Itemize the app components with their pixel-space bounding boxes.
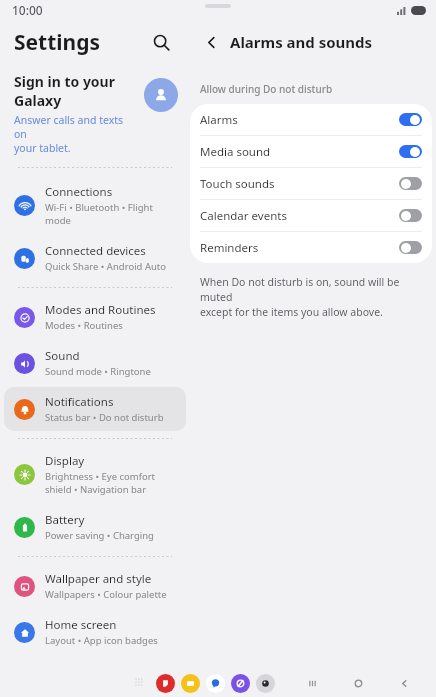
button[interactable]: recents (302, 673, 322, 693)
button[interactable]: Back (198, 29, 224, 55)
button[interactable]: Sign in to your (0, 64, 190, 161)
button[interactable]: Battery (4, 505, 186, 549)
staticText: Sound mode • Ringtone (45, 365, 151, 378)
button[interactable] (399, 113, 422, 126)
staticText: Wallpapers • Colour palette (45, 588, 167, 601)
staticText: Wallpaper and style (45, 571, 152, 587)
staticText: Connections (45, 184, 113, 200)
staticText: 10:00 (12, 2, 43, 18)
button[interactable] (399, 209, 422, 222)
button[interactable]: Calendar events (190, 200, 432, 231)
staticText: Modes and Routines (45, 302, 156, 318)
staticText: Connected devices (45, 243, 146, 259)
button[interactable]: Display (4, 446, 186, 503)
staticText: Home screen (45, 617, 117, 633)
staticText: Allow during Do not disturb (200, 82, 333, 96)
staticText: Media sound (200, 144, 399, 160)
staticText: Battery (45, 512, 85, 528)
staticText: Brightness • Eye comfort shield • Naviga… (45, 470, 156, 496)
staticText: Sound (45, 348, 80, 364)
staticText: Modes • Routines (45, 319, 123, 332)
button[interactable]: files (181, 674, 200, 693)
staticText: Layout • App icon badges (45, 634, 158, 647)
button[interactable]: Alarms (190, 104, 432, 135)
button[interactable]: Touch sounds (190, 168, 432, 199)
staticText: Calendar events (200, 208, 399, 224)
staticText: Reminders (200, 240, 399, 256)
staticText: Status bar • Do not disturb (45, 411, 164, 424)
button[interactable]: internet (231, 674, 250, 693)
button[interactable]: notes (156, 674, 175, 693)
button[interactable]: Sound (4, 341, 186, 385)
button[interactable]: Reminders (190, 232, 432, 263)
button[interactable]: Modes and Routines (4, 295, 186, 339)
staticText: Wi-Fi • Bluetooth • Flight mode (45, 201, 153, 227)
button[interactable]: home (348, 673, 368, 693)
button[interactable]: Notifications (4, 387, 186, 431)
button[interactable]: Search (146, 27, 176, 57)
staticText: Quick Share • Android Auto (45, 260, 167, 273)
button[interactable]: camera (256, 674, 275, 693)
staticText: When Do not disturb is on, sound will be… (200, 275, 428, 319)
staticText: Alarms and sounds (230, 32, 373, 52)
button[interactable]: Home screen (4, 610, 186, 654)
button[interactable]: msg (206, 674, 225, 693)
button[interactable] (399, 145, 422, 158)
button[interactable]: Connected devices (4, 236, 186, 280)
staticText: Display (45, 453, 85, 469)
staticText: Notifications (45, 394, 114, 410)
button[interactable]: All apps (130, 673, 150, 693)
button[interactable]: Media sound (190, 136, 432, 167)
button[interactable]: Connections (4, 177, 186, 234)
staticText: Alarms (200, 112, 399, 128)
button[interactable] (399, 177, 422, 190)
button[interactable] (399, 241, 422, 254)
staticText: Sign in to your (14, 72, 115, 91)
staticText: Answer calls and texts on your tablet. (14, 113, 138, 155)
staticText: Touch sounds (200, 176, 399, 192)
staticText: Galaxy (14, 91, 62, 110)
button[interactable]: back (394, 673, 414, 693)
staticText: Power saving • Charging (45, 529, 154, 542)
staticText: Settings (14, 28, 101, 57)
button[interactable]: Wallpaper and style (4, 564, 186, 608)
